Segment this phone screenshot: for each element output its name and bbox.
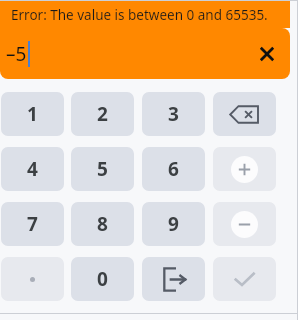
staticText: 5 — [97, 156, 108, 182]
button[interactable]: 9 — [142, 202, 205, 246]
button[interactable]: 6 — [142, 147, 205, 191]
staticText: Error: The value is between 0 and 65535. — [11, 6, 268, 24]
button[interactable]: 4 — [1, 147, 64, 191]
button[interactable]: 8 — [71, 202, 134, 246]
button[interactable]: Backspace — [213, 92, 276, 136]
staticText: –5 — [6, 41, 27, 67]
staticText: 9 — [168, 211, 179, 237]
button[interactable]: Increment — [213, 147, 276, 191]
button[interactable]: –5 — [0, 28, 290, 79]
button[interactable]: 3 — [142, 92, 205, 136]
button[interactable]: 1 — [1, 92, 64, 136]
staticText: 1 — [27, 101, 38, 127]
staticText: 0 — [97, 266, 108, 292]
button[interactable]: Submit and exit — [142, 257, 205, 301]
staticText: 2 — [97, 101, 108, 127]
staticText: 6 — [168, 156, 179, 182]
button[interactable]: 7 — [1, 202, 64, 246]
button[interactable]: Confirm — [213, 257, 276, 301]
staticText: 8 — [97, 211, 108, 237]
button[interactable]: 5 — [71, 147, 134, 191]
button[interactable]: Error: The value is between 0 and 65535. — [0, 1, 290, 28]
button[interactable]: Clear — [250, 37, 284, 71]
button[interactable]: Decimal point — [1, 257, 64, 301]
button[interactable]: Decrement — [213, 202, 276, 246]
button[interactable]: 2 — [71, 92, 134, 136]
button[interactable]: 0 — [71, 257, 134, 301]
staticText: 3 — [168, 101, 179, 127]
staticText: 7 — [27, 211, 38, 237]
staticText: 4 — [27, 156, 38, 182]
